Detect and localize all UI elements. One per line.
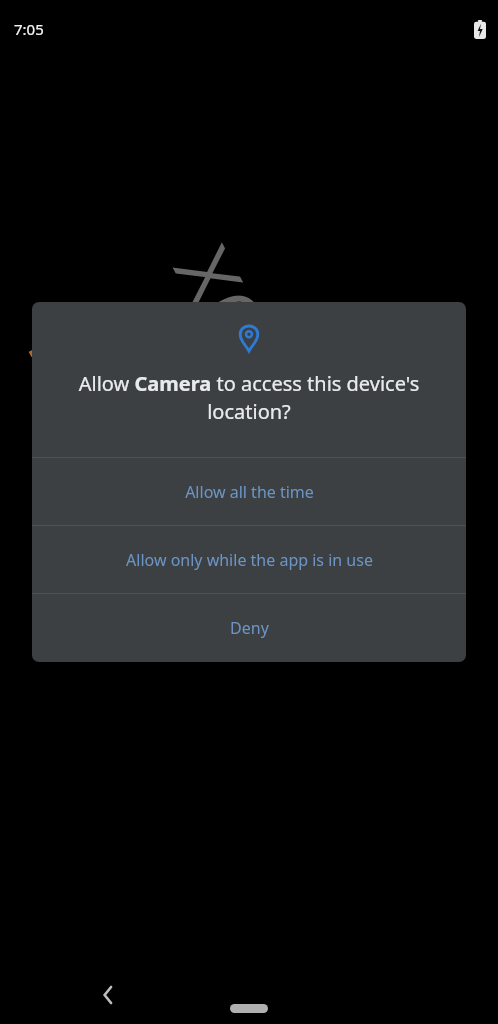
staticText: Deny bbox=[230, 617, 269, 639]
button[interactable]: Home bbox=[219, 995, 279, 1021]
staticText: 7:05 bbox=[14, 19, 44, 39]
staticText: Allow all the time bbox=[185, 481, 314, 503]
button[interactable]: Back bbox=[88, 975, 128, 1015]
staticText: Allow Camera to access this device's loc… bbox=[48, 370, 450, 425]
button[interactable]: Deny bbox=[32, 594, 466, 661]
button[interactable]: Allow only while the app is in use bbox=[32, 526, 466, 593]
staticText: Allow only while the app is in use bbox=[126, 549, 373, 571]
button[interactable]: Allow all the time bbox=[32, 458, 466, 525]
staticText: xdadevelopers bbox=[19, 213, 498, 786]
